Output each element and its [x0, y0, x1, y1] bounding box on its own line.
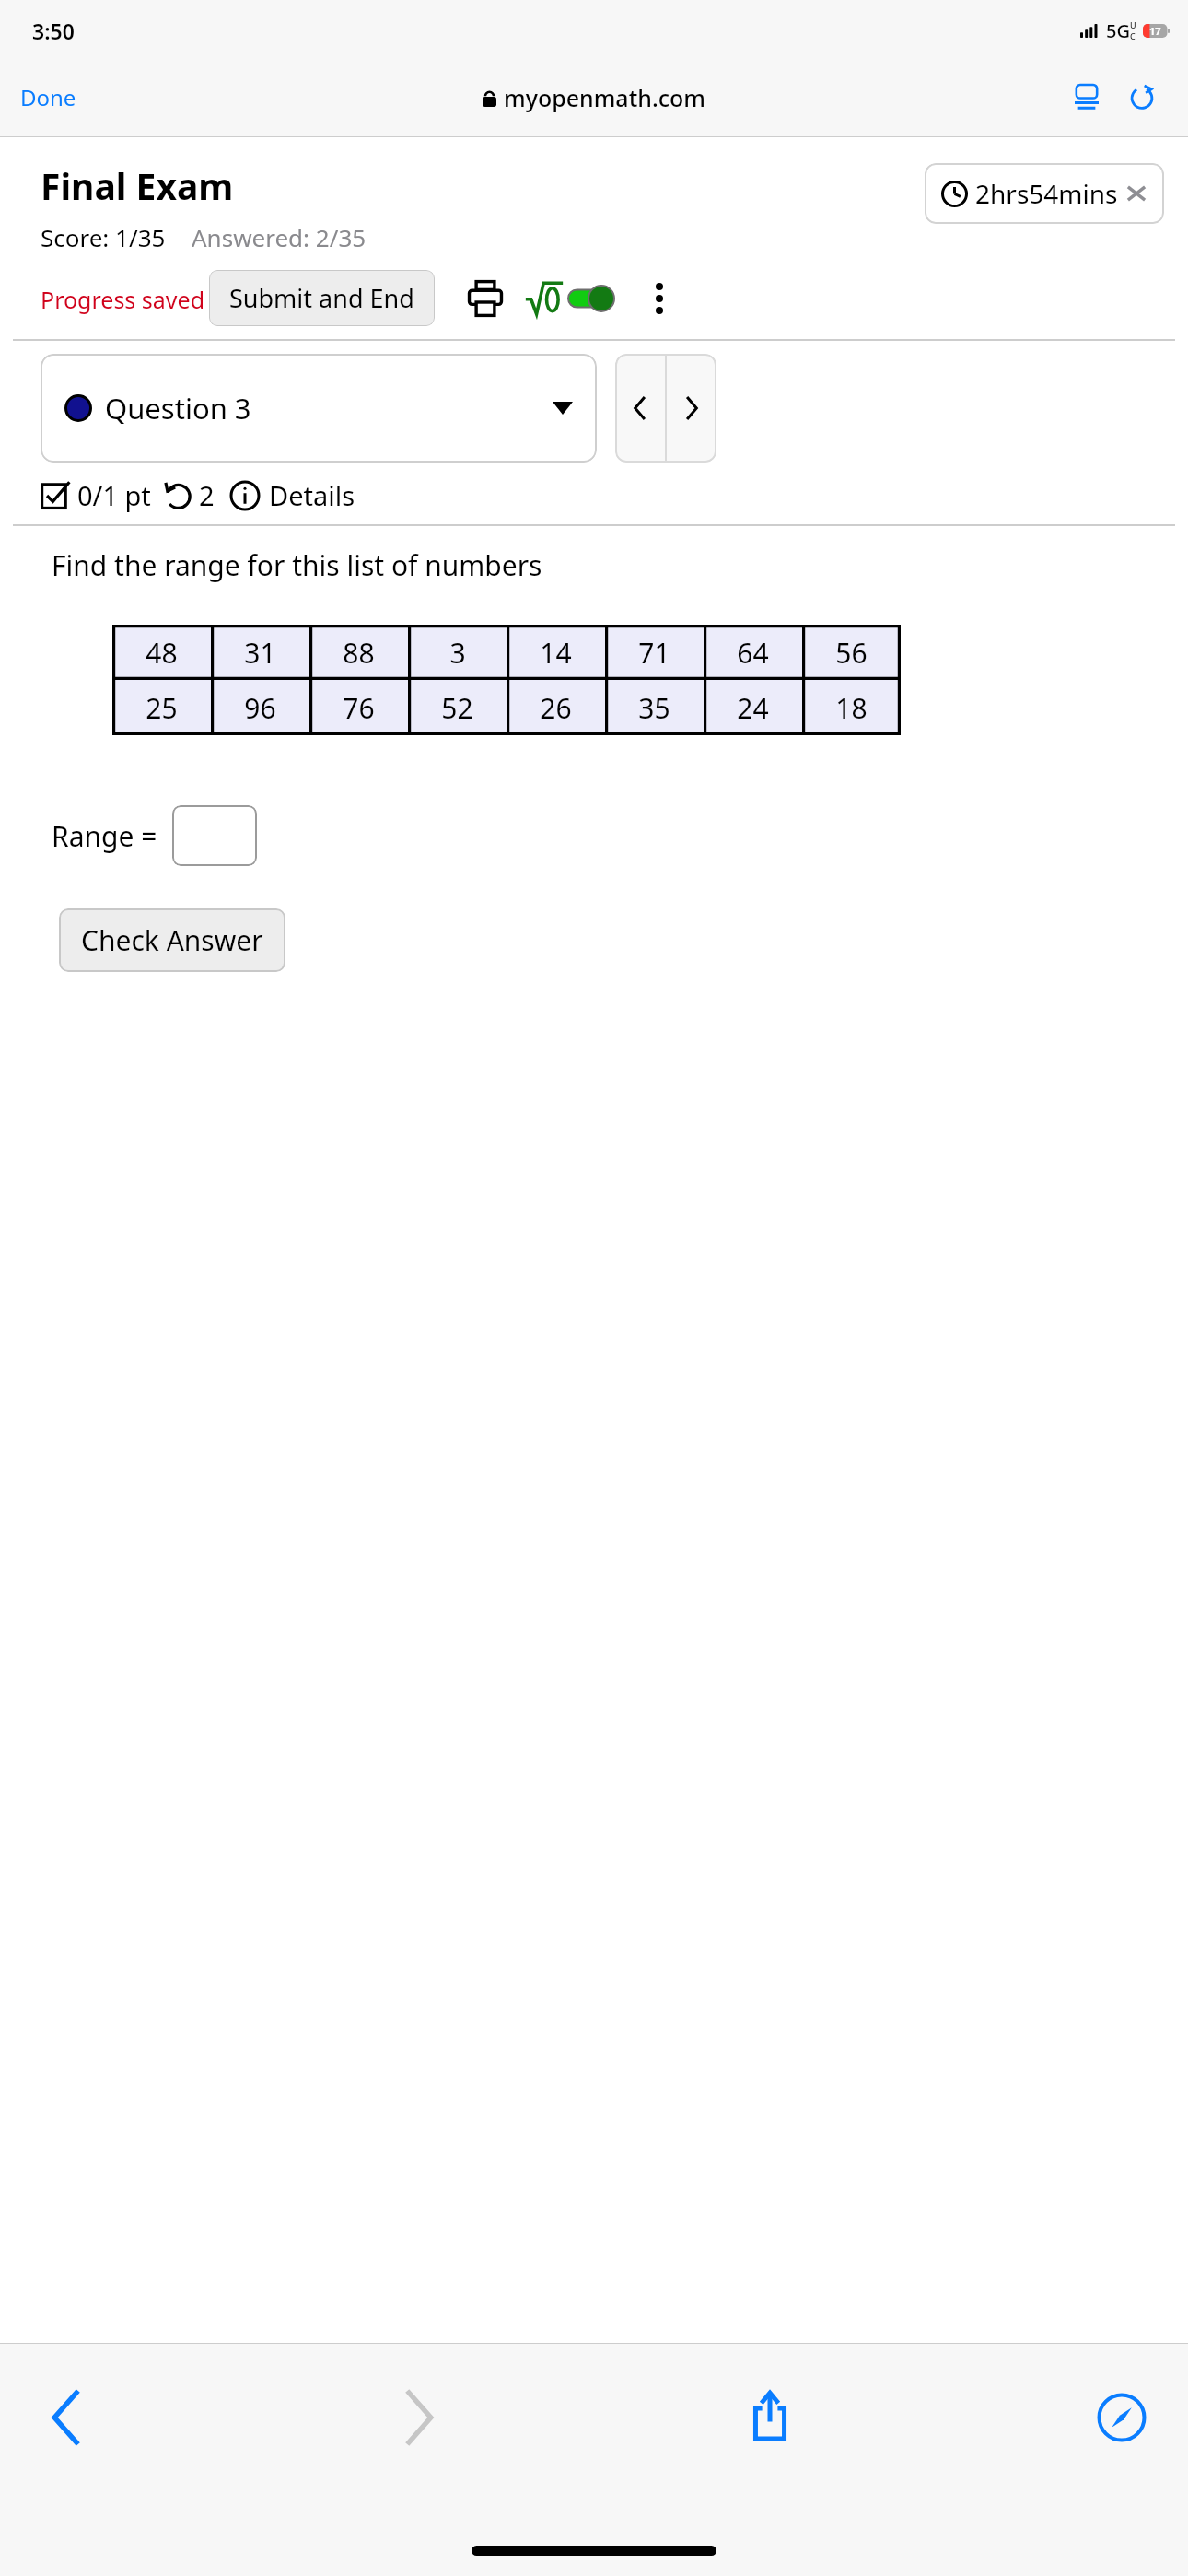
- staticText: Question 3: [105, 389, 251, 427]
- staticText: Check Answer: [81, 921, 263, 959]
- button[interactable]: Bookmarks: [1077, 2373, 1166, 2462]
- button[interactable]: Forward: [374, 2373, 462, 2462]
- staticText: 0/1 pt: [77, 477, 151, 513]
- button[interactable]: Toggle math view: [523, 276, 616, 321]
- staticText: U: [1130, 19, 1136, 30]
- button[interactable]: Range answer field: [172, 805, 257, 866]
- staticText: Progress saved: [41, 284, 205, 315]
- staticText: 2: [199, 477, 215, 513]
- staticText: 18: [835, 689, 868, 727]
- button[interactable]: Share: [726, 2373, 814, 2462]
- staticText: 17: [1149, 24, 1161, 38]
- staticText: Range =: [52, 817, 157, 855]
- staticText: myopenmath.com: [504, 82, 705, 113]
- button[interactable]: myopenmath.com: [473, 76, 715, 119]
- button[interactable]: Details: [227, 477, 357, 513]
- staticText: 5G: [1106, 18, 1130, 43]
- button[interactable]: Check Answer: [59, 908, 285, 972]
- staticText: 24: [737, 689, 769, 727]
- staticText: Done: [20, 82, 76, 112]
- button[interactable]: Back: [22, 2373, 111, 2462]
- button[interactable]: Previous question: [615, 354, 665, 463]
- staticText: 56: [835, 634, 868, 672]
- staticText: Score: 1/35: [41, 221, 166, 253]
- staticText: 88: [343, 634, 375, 672]
- button[interactable]: 2hrs54mins: [925, 163, 1164, 224]
- staticText: 14: [540, 634, 572, 672]
- button[interactable]: Question 3: [41, 354, 597, 463]
- staticText: 96: [244, 689, 276, 727]
- staticText: 25: [146, 689, 178, 727]
- button[interactable]: Reader view: [1061, 72, 1112, 123]
- staticText: 48: [146, 634, 178, 672]
- staticText: Answered: 2/35: [192, 221, 367, 253]
- staticText: 26: [540, 689, 572, 727]
- staticText: 35: [638, 689, 670, 727]
- staticText: Final Exam: [41, 161, 234, 210]
- staticText: 3: [449, 634, 466, 672]
- staticText: 64: [737, 634, 769, 672]
- staticText: 31: [244, 634, 276, 672]
- button[interactable]: Submit and End: [209, 270, 435, 326]
- staticText: 76: [343, 689, 375, 727]
- staticText: 52: [441, 689, 473, 727]
- staticText: Find the range for this list of numbers: [52, 546, 542, 584]
- button[interactable]: Reload: [1116, 72, 1168, 123]
- staticText: Details: [269, 477, 355, 513]
- button[interactable]: More options: [636, 275, 682, 322]
- staticText: Submit and End: [229, 281, 414, 315]
- staticText: 71: [638, 634, 670, 672]
- button[interactable]: Done: [9, 76, 87, 118]
- staticText: 3:50: [32, 17, 75, 45]
- staticText: 2hrs54mins: [975, 176, 1118, 211]
- button[interactable]: Next question: [667, 354, 716, 463]
- staticText: C: [1130, 30, 1136, 41]
- button[interactable]: Print: [460, 274, 510, 323]
